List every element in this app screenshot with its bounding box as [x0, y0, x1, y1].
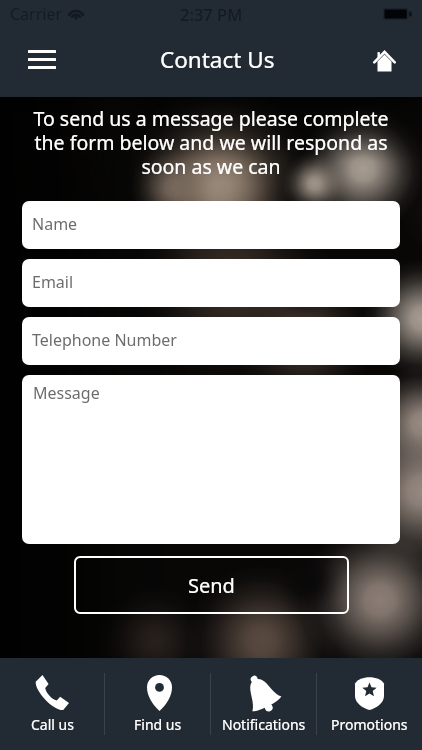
button[interactable]: Promotions	[317, 658, 422, 750]
staticText: Message	[33, 382, 100, 404]
button[interactable]: Call us	[0, 658, 104, 750]
staticText: Send	[188, 572, 235, 599]
staticText: Carrier	[10, 3, 63, 25]
staticText: Call us	[31, 715, 74, 734]
button[interactable]: Message	[22, 375, 400, 544]
staticText: Email	[32, 271, 74, 293]
staticText: Promotions	[331, 715, 408, 734]
button[interactable]: Notifications	[211, 658, 316, 750]
button[interactable]: Find us	[105, 658, 210, 750]
button[interactable]: Send	[74, 556, 349, 614]
staticText: Name	[32, 213, 78, 235]
button[interactable]: Menu	[14, 33, 70, 85]
button[interactable]: Home	[361, 38, 407, 84]
staticText: To send us a message please complete the…	[18, 105, 404, 179]
staticText: 2:37 PM	[180, 3, 243, 25]
button[interactable]: Name	[22, 201, 400, 249]
staticText: Telephone Number	[32, 329, 177, 351]
button[interactable]: Telephone Number	[22, 317, 400, 365]
staticText: Notifications	[222, 715, 306, 734]
staticText: Contact Us	[160, 44, 275, 75]
button[interactable]: Email	[22, 259, 400, 307]
staticText: Find us	[134, 715, 182, 734]
